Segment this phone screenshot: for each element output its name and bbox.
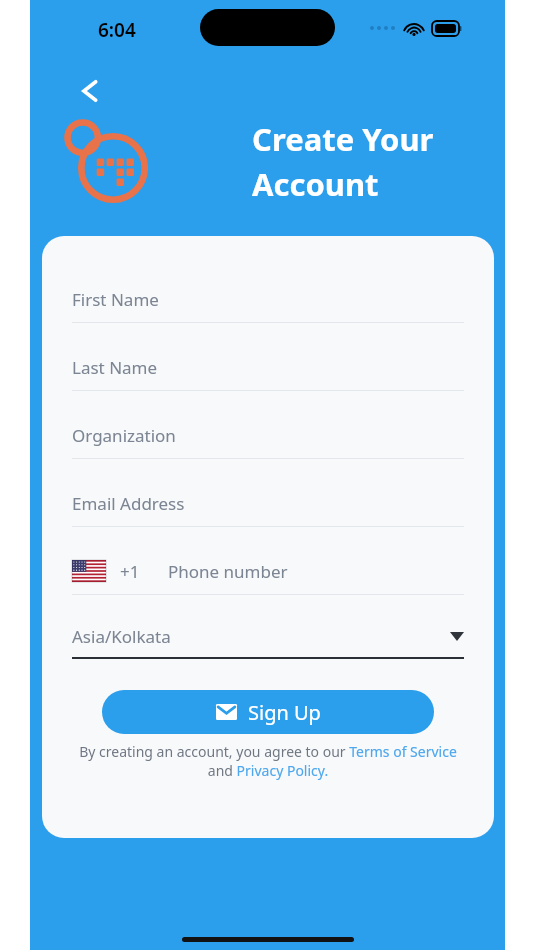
staticText: Email Address: [72, 492, 185, 515]
staticText: Organization: [72, 424, 176, 447]
button[interactable]: Email Address: [72, 480, 464, 548]
staticText: Asia/Kolkata: [72, 625, 171, 648]
button[interactable]: Back: [68, 68, 112, 112]
staticText: Last Name: [72, 356, 158, 379]
button[interactable]: Select timezone: [72, 615, 464, 659]
staticText: First Name: [72, 288, 159, 311]
button[interactable]: Organization: [72, 412, 464, 480]
staticText: +1: [120, 560, 140, 583]
staticText: Sign Up: [248, 699, 321, 726]
button[interactable]: By creating an account, you agree to our…: [70, 742, 466, 780]
staticText: Create Your Account: [252, 118, 434, 205]
staticText: 6:04: [98, 17, 136, 43]
staticText: Phone number: [168, 560, 288, 583]
button[interactable]: Sign Up: [102, 690, 434, 734]
button[interactable]: Last Name: [72, 344, 464, 412]
button[interactable]: +1: [72, 548, 464, 595]
button[interactable]: First Name: [72, 276, 464, 344]
